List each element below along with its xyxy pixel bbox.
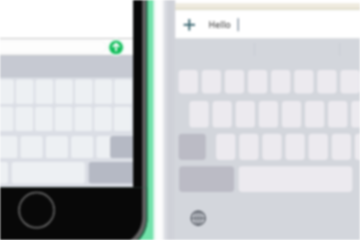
button[interactable]: Keyboard screenshots comparison (0, 0, 360, 240)
